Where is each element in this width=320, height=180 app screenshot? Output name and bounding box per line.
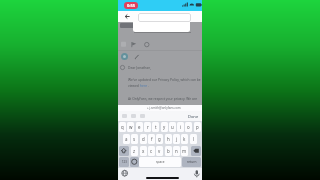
staticText: q: [121, 124, 124, 130]
button[interactable]: f: [148, 134, 155, 144]
button[interactable]: s: [131, 134, 138, 144]
button[interactable]: [138, 13, 191, 22]
button[interactable]: a: [123, 134, 130, 144]
staticText: v: [158, 148, 161, 154]
staticText: At OnlyFans, we respect your privacy. We…: [128, 96, 198, 100]
staticText: Dear Jonathan,: [128, 65, 152, 69]
button[interactable]: o: [185, 122, 192, 132]
button[interactable]: [121, 53, 128, 60]
staticText: n: [175, 148, 178, 154]
button[interactable]: return: [182, 157, 201, 167]
staticText: viewed: [128, 83, 140, 87]
button[interactable]: here: [140, 83, 148, 87]
button[interactable]: l: [190, 134, 197, 144]
staticText: x: [142, 148, 145, 154]
staticText: o: [187, 124, 190, 130]
staticText: j: [176, 136, 178, 142]
button[interactable]: [130, 157, 139, 167]
button[interactable]: + j.smith@onlyfans.com: [147, 106, 181, 110]
staticText: l: [193, 136, 195, 142]
staticText: g: [158, 136, 161, 142]
staticText: 123: [122, 160, 127, 164]
button[interactable]: t: [152, 122, 159, 132]
staticText: return: [187, 160, 197, 164]
staticText: e: [138, 124, 141, 130]
button[interactable]: z: [131, 146, 138, 156]
staticText: r: [147, 124, 149, 130]
button[interactable]: 123: [119, 157, 129, 167]
button[interactable]: [119, 146, 129, 156]
staticText: b: [167, 148, 170, 154]
button[interactable]: k: [181, 134, 188, 144]
button[interactable]: i: [177, 122, 184, 132]
button[interactable]: 0:55: [124, 2, 138, 9]
staticText: 0:55: [127, 3, 135, 8]
staticText: m: [182, 148, 187, 154]
staticText: h: [167, 136, 170, 142]
button[interactable]: [120, 23, 134, 28]
staticText: t: [155, 124, 157, 130]
button[interactable]: c: [148, 146, 155, 156]
staticText: d: [142, 136, 145, 142]
button[interactable]: p: [194, 122, 201, 132]
button[interactable]: r: [144, 122, 151, 132]
button[interactable]: [122, 12, 132, 21]
button[interactable]: y: [161, 122, 168, 132]
staticText: c: [150, 148, 153, 154]
button[interactable]: space: [139, 157, 181, 167]
button[interactable]: d: [140, 134, 147, 144]
staticText: Done: [188, 114, 199, 119]
staticText: s: [133, 136, 136, 142]
staticText: w: [129, 124, 133, 130]
button[interactable]: u: [169, 122, 176, 132]
button[interactable]: h: [165, 134, 172, 144]
staticText: p: [196, 124, 199, 130]
staticText: f: [151, 136, 153, 142]
button[interactable]: [133, 22, 190, 32]
button[interactable]: b: [165, 146, 172, 156]
button[interactable]: Done: [188, 114, 199, 119]
button[interactable]: w: [127, 122, 134, 132]
button[interactable]: m: [181, 146, 188, 156]
staticText: .: [148, 83, 149, 87]
button[interactable]: v: [156, 146, 163, 156]
button[interactable]: q: [119, 122, 126, 132]
staticText: z: [133, 148, 136, 154]
staticText: space: [156, 160, 165, 164]
button[interactable]: j: [173, 134, 180, 144]
staticText: i: [180, 124, 182, 130]
staticText: We've updated our Privacy Policy, which …: [128, 77, 201, 81]
button[interactable]: x: [140, 146, 147, 156]
staticText: a: [125, 136, 128, 142]
button[interactable]: g: [156, 134, 163, 144]
button[interactable]: [191, 146, 201, 156]
button[interactable]: n: [173, 146, 180, 156]
staticText: u: [171, 124, 174, 130]
button[interactable]: e: [136, 122, 143, 132]
staticText: y: [163, 124, 166, 130]
staticText: k: [183, 136, 186, 142]
